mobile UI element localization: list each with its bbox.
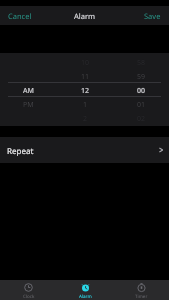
staticText: AM	[23, 86, 35, 96]
staticText: Save	[144, 11, 161, 21]
staticText: PM	[23, 100, 34, 110]
staticText: Cancel	[8, 11, 32, 21]
staticText: 2	[83, 114, 88, 124]
staticText: 59	[137, 72, 146, 82]
button[interactable]: Repeat	[0, 137, 169, 163]
staticText: 00	[137, 86, 146, 96]
button[interactable]: Clock	[0, 280, 57, 300]
button[interactable]: 01	[113, 98, 169, 112]
staticText: 12	[81, 86, 90, 96]
button[interactable]: 11	[57, 70, 113, 84]
button[interactable]: 00	[113, 84, 169, 98]
button[interactable]: Timer	[113, 280, 169, 300]
staticText: 02	[137, 114, 146, 124]
other: Open repeat options	[157, 146, 165, 154]
staticText: 58	[137, 58, 146, 68]
staticText: 01	[137, 100, 146, 110]
button[interactable]: AM	[0, 84, 57, 98]
button[interactable]: PM	[0, 98, 57, 112]
staticText: Timer	[135, 293, 148, 299]
staticText: Alarm	[74, 11, 96, 21]
button[interactable]: Save	[136, 7, 169, 25]
staticText: 10	[81, 58, 90, 68]
button[interactable]	[0, 70, 57, 84]
button[interactable]: Cancel	[0, 7, 40, 25]
button[interactable]: 59	[113, 70, 169, 84]
staticText: Alarm	[79, 293, 92, 299]
button[interactable]: 12	[57, 84, 113, 98]
staticText: 1	[83, 100, 88, 110]
staticText: 11	[81, 72, 90, 82]
button[interactable]: Alarm	[57, 280, 113, 300]
staticText: Clock	[23, 293, 35, 299]
staticText: Repeat	[7, 145, 34, 156]
